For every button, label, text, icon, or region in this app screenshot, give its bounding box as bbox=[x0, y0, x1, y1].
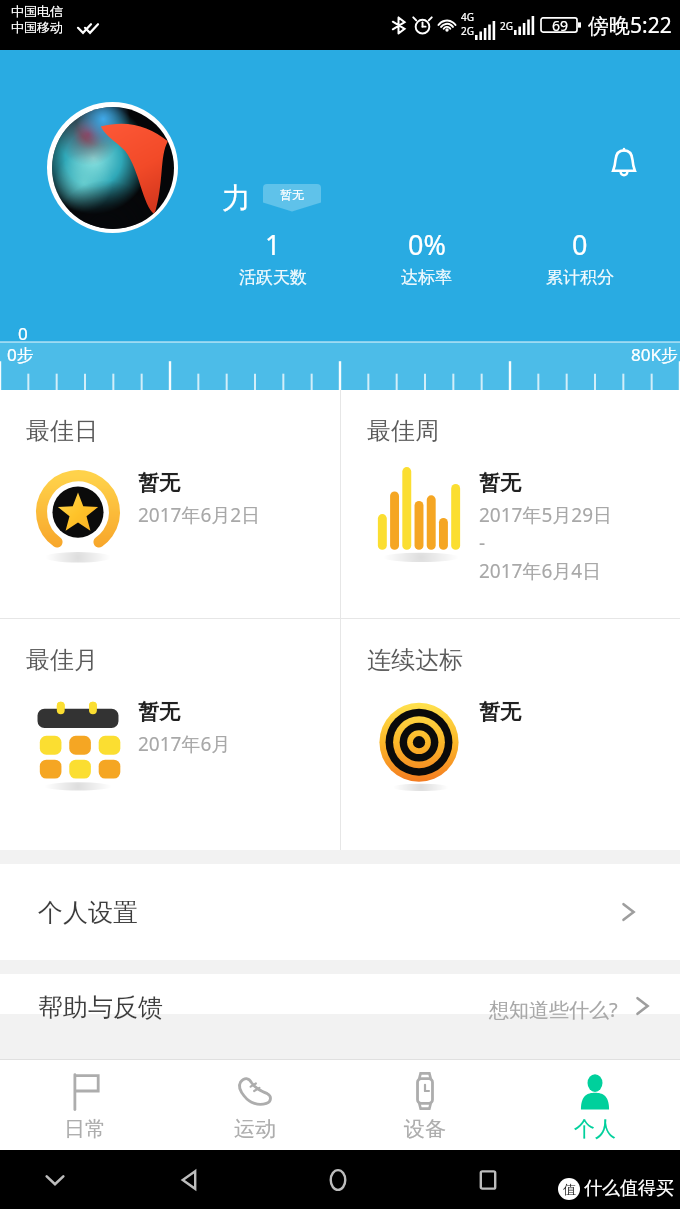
staticText: 值 bbox=[563, 1181, 576, 1197]
staticText: 2017年5月29日 bbox=[479, 502, 613, 528]
button[interactable]: 设备 bbox=[340, 1060, 510, 1150]
button[interactable]: 最佳周 bbox=[341, 390, 680, 618]
staticText: 中国移动 bbox=[11, 19, 63, 35]
staticText: 2017年6月4日 bbox=[479, 558, 602, 584]
staticText: 最佳周 bbox=[367, 416, 439, 446]
staticText: 连续达标 bbox=[367, 645, 463, 675]
button[interactable]: 最佳月 bbox=[0, 619, 340, 850]
staticText: 0% bbox=[408, 226, 446, 263]
staticText: 0 bbox=[18, 322, 28, 345]
staticText: 暂无 bbox=[138, 699, 180, 725]
button[interactable]: 连续达标 bbox=[341, 619, 680, 850]
button[interactable]: 0 bbox=[503, 226, 656, 288]
staticText: 个人 bbox=[574, 1116, 616, 1142]
button[interactable]: 最佳日 bbox=[0, 390, 340, 618]
staticText: 暂无 bbox=[479, 470, 521, 496]
button[interactable]: 日常 bbox=[0, 1060, 170, 1150]
staticText: 运动 bbox=[234, 1116, 276, 1142]
staticText: 0 bbox=[572, 226, 588, 263]
button[interactable]: 帮助与反馈 bbox=[0, 974, 680, 1014]
button[interactable]: 个人 bbox=[510, 1060, 680, 1150]
staticText: 2017年6月2日 bbox=[138, 502, 261, 528]
staticText: 80K步 bbox=[631, 343, 678, 366]
staticText: 最佳月 bbox=[26, 645, 98, 675]
staticText: 帮助与反馈 bbox=[38, 992, 163, 1023]
staticText: 最佳日 bbox=[26, 416, 98, 446]
staticText: 达标率 bbox=[401, 267, 452, 288]
button[interactable]: 运动 bbox=[170, 1060, 340, 1150]
other: Open bbox=[614, 898, 642, 926]
staticText: 累计积分 bbox=[546, 267, 614, 288]
staticText: 设备 bbox=[404, 1116, 446, 1142]
staticText: 傍晚5:22 bbox=[588, 11, 672, 40]
staticText: 69 bbox=[552, 16, 569, 35]
staticText: - bbox=[479, 530, 486, 556]
other: Back bbox=[177, 1167, 203, 1193]
staticText: 暂无 bbox=[280, 187, 304, 202]
staticText: 力 bbox=[222, 180, 251, 217]
staticText: 个人设置 bbox=[38, 897, 138, 928]
staticText: 什么值得买 bbox=[584, 1177, 674, 1200]
staticText: 想知道些什么? bbox=[489, 996, 618, 1023]
button[interactable]: 个人设置 bbox=[0, 864, 680, 960]
other: Recents bbox=[476, 1168, 500, 1192]
staticText: 活跃天数 bbox=[239, 267, 307, 288]
staticText: 2G bbox=[461, 24, 474, 38]
button[interactable]: 0% bbox=[350, 226, 503, 288]
staticText: 中国电信 bbox=[11, 3, 63, 19]
staticText: 2G bbox=[500, 19, 513, 33]
staticText: 1 bbox=[265, 226, 281, 263]
other: Home bbox=[325, 1167, 351, 1193]
staticText: 0步 bbox=[7, 343, 34, 366]
button[interactable]: Notifications bbox=[598, 138, 650, 190]
button[interactable]: Avatar bbox=[47, 102, 178, 233]
staticText: 暂无 bbox=[479, 699, 521, 725]
staticText: 2017年6月 bbox=[138, 731, 231, 757]
staticText: 4G bbox=[461, 10, 474, 24]
other: Hide bbox=[42, 1167, 68, 1193]
button[interactable]: 暂无 bbox=[263, 184, 321, 214]
staticText: 日常 bbox=[64, 1116, 106, 1142]
staticText: 暂无 bbox=[138, 470, 180, 496]
button[interactable]: 1 bbox=[196, 226, 350, 288]
